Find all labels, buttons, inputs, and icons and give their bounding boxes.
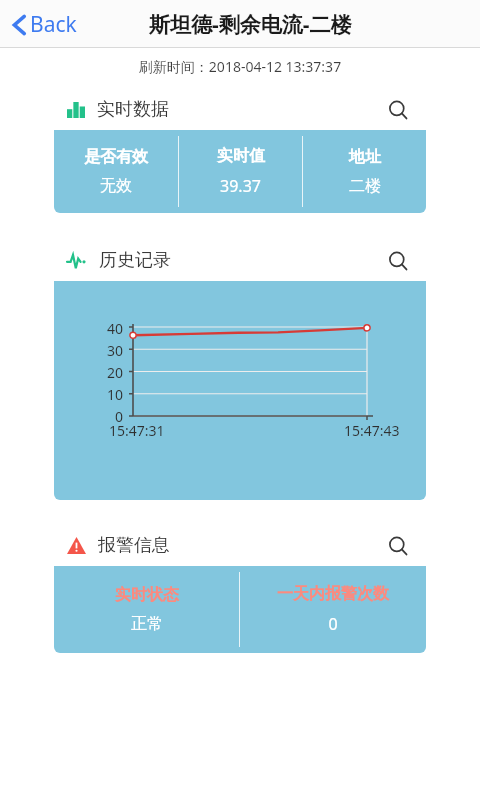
staticText: 15:47:31 — [109, 421, 165, 440]
staticText: 实时值 — [217, 146, 265, 166]
button[interactable]: Search — [383, 531, 413, 561]
staticText: 15:47:43 — [344, 421, 400, 440]
staticText: 实时状态 — [115, 585, 179, 605]
button[interactable]: Search — [383, 95, 413, 125]
button[interactable]: 实时状态 — [54, 566, 239, 653]
button[interactable]: Back — [8, 6, 80, 43]
button[interactable]: 是否有效 — [54, 130, 178, 213]
button[interactable]: 实时值 — [179, 130, 302, 213]
staticText: 40 — [107, 319, 124, 338]
staticText: 是否有效 — [84, 147, 148, 167]
button[interactable]: 历史记录 — [54, 240, 426, 500]
button[interactable]: Search — [383, 246, 413, 276]
staticText: 0 — [328, 613, 338, 635]
staticText: 0 — [115, 407, 124, 423]
staticText: 30 — [107, 341, 124, 360]
staticText: Back — [30, 10, 77, 39]
staticText: 一天内报警次数 — [277, 584, 389, 604]
staticText: 斯坦德-剩余电流-二楼 — [149, 10, 352, 39]
staticText: 20 — [107, 363, 124, 382]
staticText: 历史记录 — [99, 249, 171, 272]
staticText: 报警信息 — [98, 534, 170, 557]
staticText: 正常 — [131, 614, 163, 634]
staticText: 无效 — [100, 176, 132, 196]
button[interactable]: 地址 — [303, 130, 426, 213]
staticText: 二楼 — [349, 176, 381, 196]
staticText: 刷新时间：2018-04-12 13:37:37 — [0, 57, 480, 76]
staticText: 地址 — [349, 147, 381, 167]
staticText: 实时数据 — [97, 98, 169, 121]
staticText: 10 — [107, 385, 124, 404]
staticText: 39.37 — [220, 175, 261, 197]
button[interactable]: 实时数据 — [54, 89, 426, 213]
button[interactable]: 一天内报警次数 — [240, 566, 426, 653]
button[interactable]: 报警信息 — [54, 525, 426, 653]
